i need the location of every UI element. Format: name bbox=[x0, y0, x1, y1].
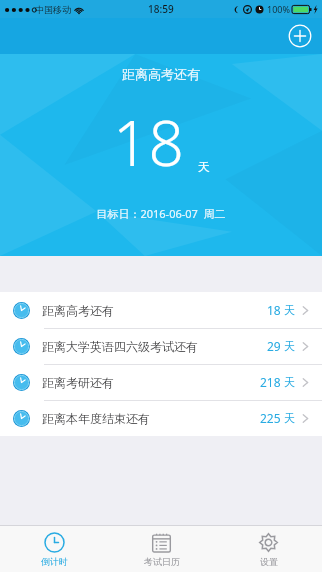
staticText: 设置 bbox=[260, 556, 278, 567]
staticText: 225 bbox=[260, 410, 281, 426]
staticText: 天 bbox=[284, 375, 295, 389]
button[interactable]: 距离大学英语四六级考试还有 bbox=[0, 328, 322, 364]
button[interactable]: 距离考研还有 bbox=[0, 364, 322, 400]
button[interactable]: 距离本年度结束还有 bbox=[0, 400, 322, 436]
staticText: 29 bbox=[267, 338, 281, 354]
button[interactable]: 倒计时 bbox=[0, 526, 108, 572]
staticText: 中国移动 bbox=[35, 4, 71, 15]
staticText: 天 bbox=[198, 159, 210, 174]
staticText: 18 bbox=[113, 100, 184, 184]
button[interactable]: 距离高考还有 bbox=[0, 292, 322, 328]
staticText: 18:59 bbox=[148, 2, 174, 16]
button[interactable]: Add countdown bbox=[288, 24, 312, 48]
staticText: 100% bbox=[267, 3, 290, 15]
staticText: 距离高考还有 bbox=[42, 303, 114, 318]
staticText: 距离考研还有 bbox=[42, 375, 114, 390]
button[interactable]: 设置 bbox=[215, 526, 322, 572]
staticText: 考试日历 bbox=[144, 556, 180, 567]
button[interactable]: 考试日历 bbox=[108, 526, 215, 572]
staticText: 目标日：2016-06-07 周二 bbox=[96, 206, 226, 221]
staticText: 天 bbox=[284, 339, 295, 353]
staticText: 218 bbox=[260, 374, 281, 390]
staticText: 距离大学英语四六级考试还有 bbox=[42, 339, 198, 354]
staticText: 天 bbox=[284, 411, 295, 425]
staticText: 距离高考还有 bbox=[122, 66, 200, 82]
staticText: 天 bbox=[284, 303, 295, 317]
staticText: 倒计时 bbox=[41, 556, 68, 567]
staticText: 18 bbox=[267, 302, 281, 318]
staticText: 距离本年度结束还有 bbox=[42, 411, 150, 426]
